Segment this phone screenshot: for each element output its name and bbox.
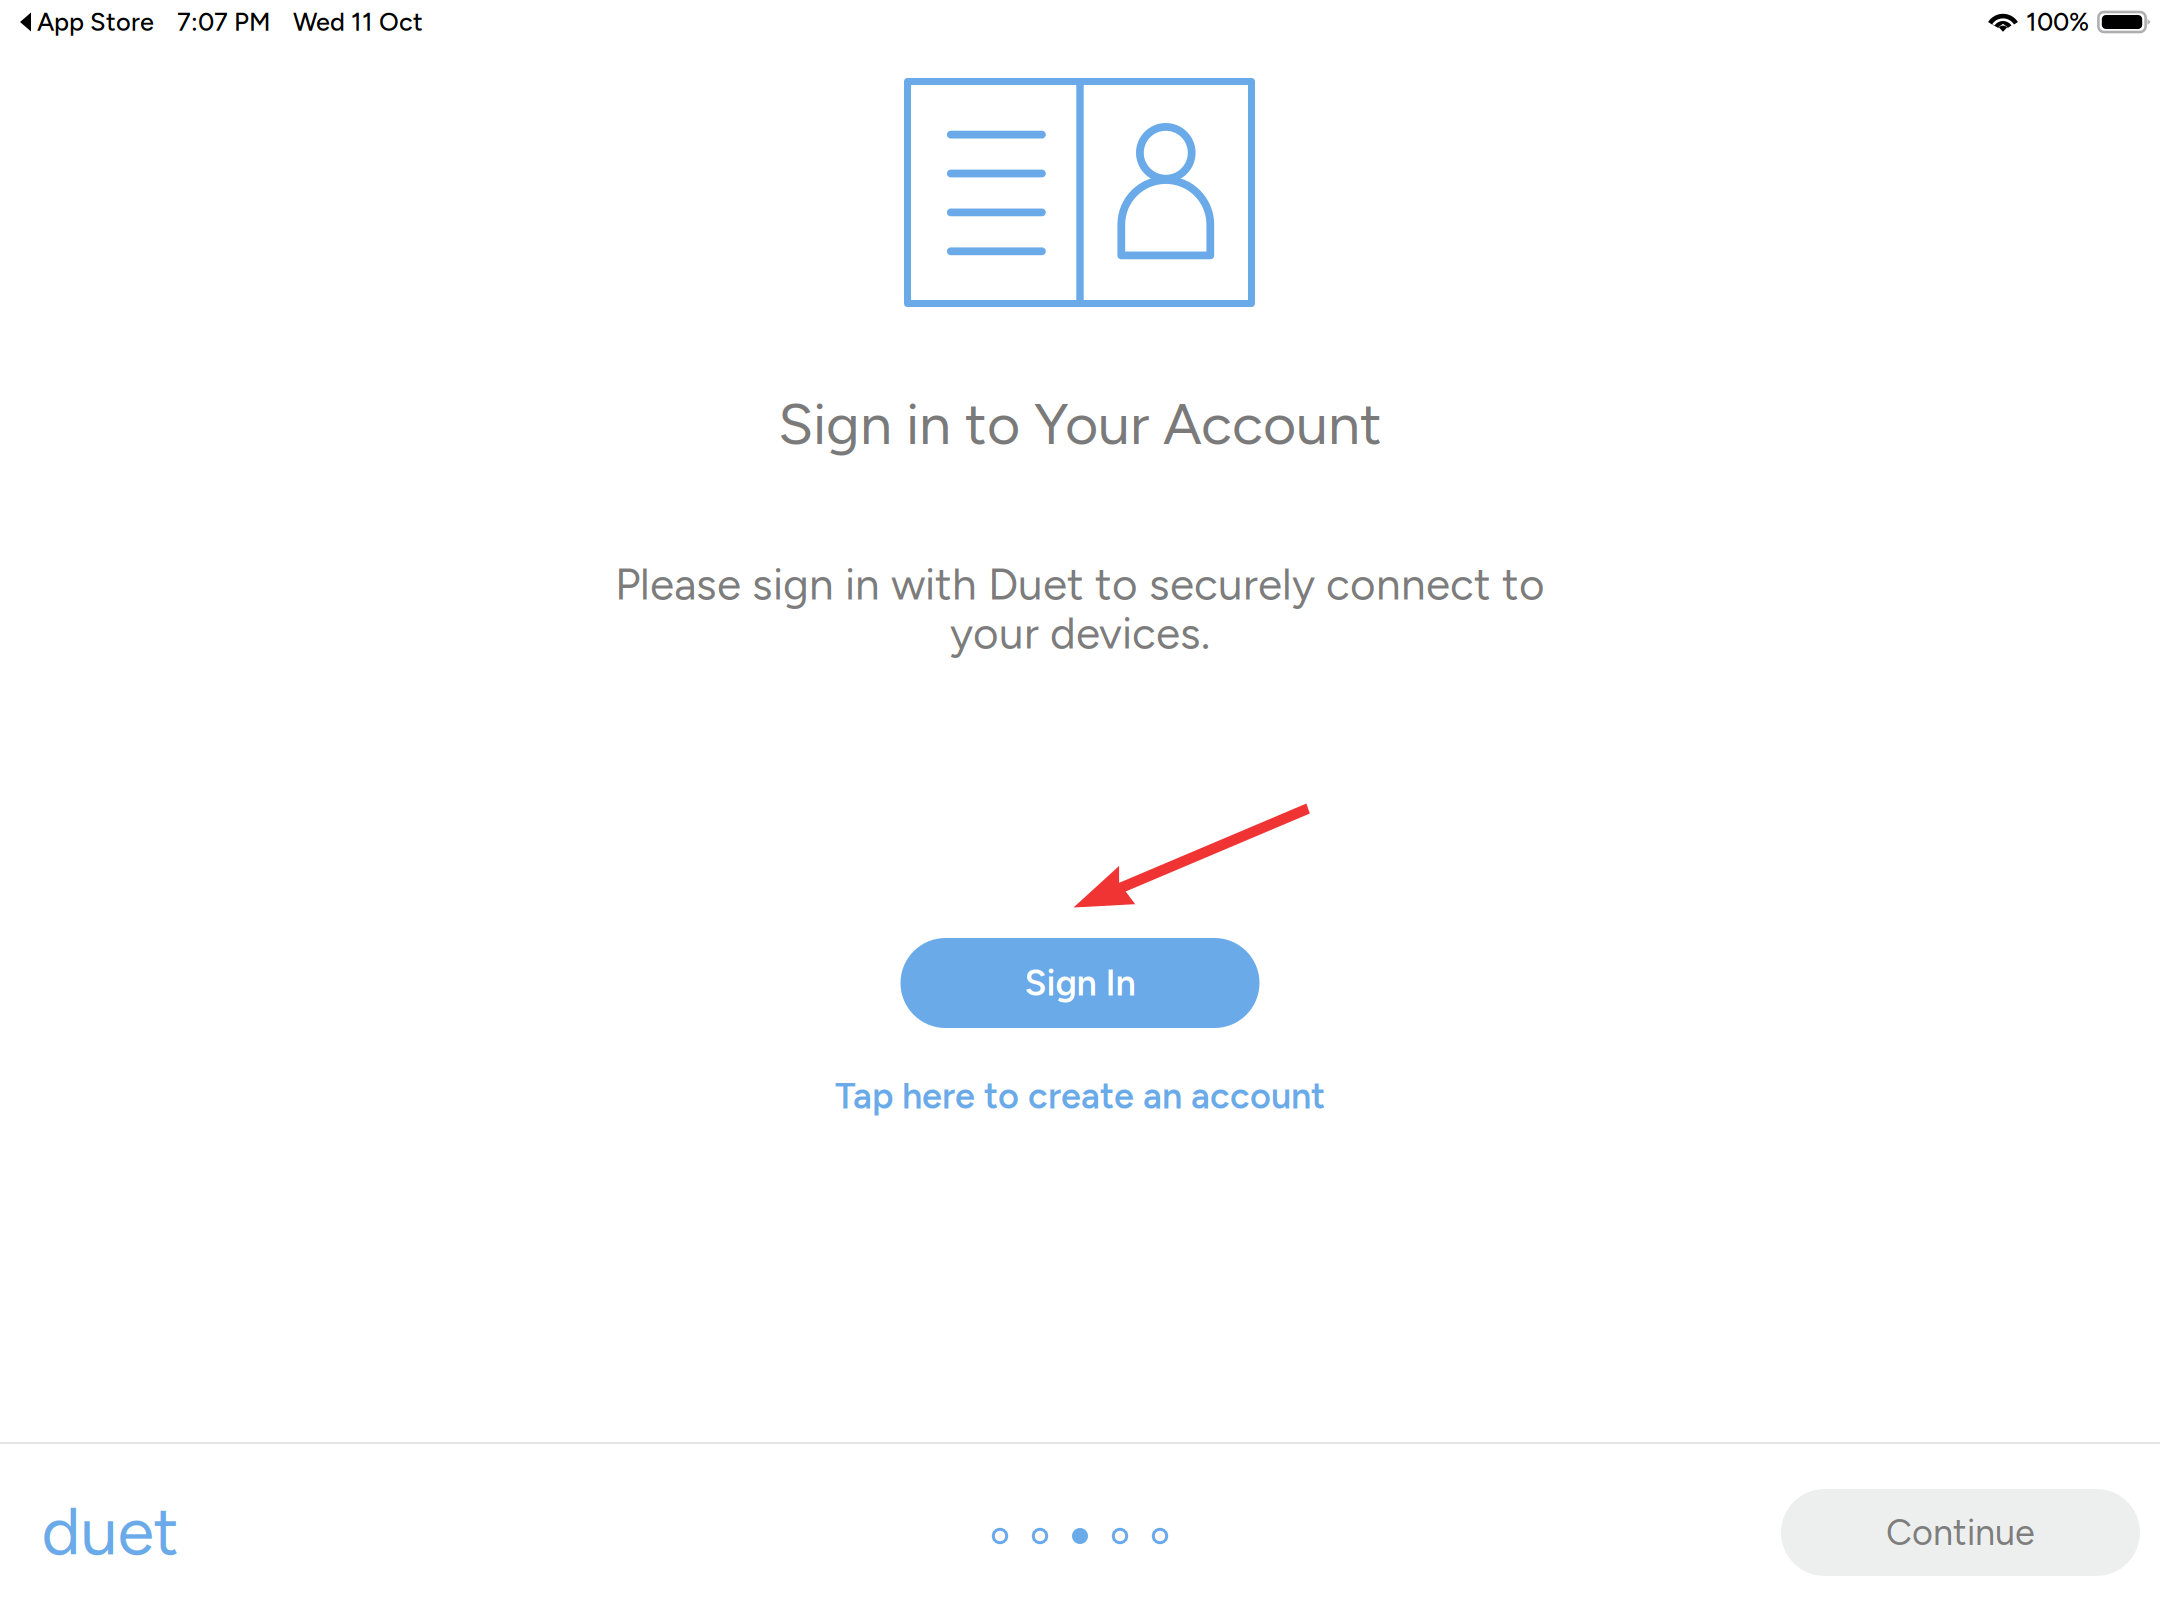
staticText: 7:07 PM [177,7,271,37]
staticText: Wed 11 Oct [293,7,423,37]
button[interactable]: Tap here to create an account [811,1063,1349,1129]
button[interactable]: Continue [1781,1489,2140,1576]
staticText: Continue [1886,1511,2035,1554]
staticText: your devices. [950,607,1210,659]
staticText: duet [41,1491,178,1571]
button[interactable]: Back to App Store [20,7,154,37]
staticText: App Store [37,7,154,37]
staticText: 100% [2026,7,2089,37]
staticText: Sign In [1024,961,1135,1005]
staticText: Please sign in with Duet to securely con… [615,558,1545,610]
staticText: Tap here to create an account [835,1074,1325,1118]
staticText: Sign in to Your Account [778,390,1382,458]
button[interactable]: Sign In [900,938,1259,1028]
